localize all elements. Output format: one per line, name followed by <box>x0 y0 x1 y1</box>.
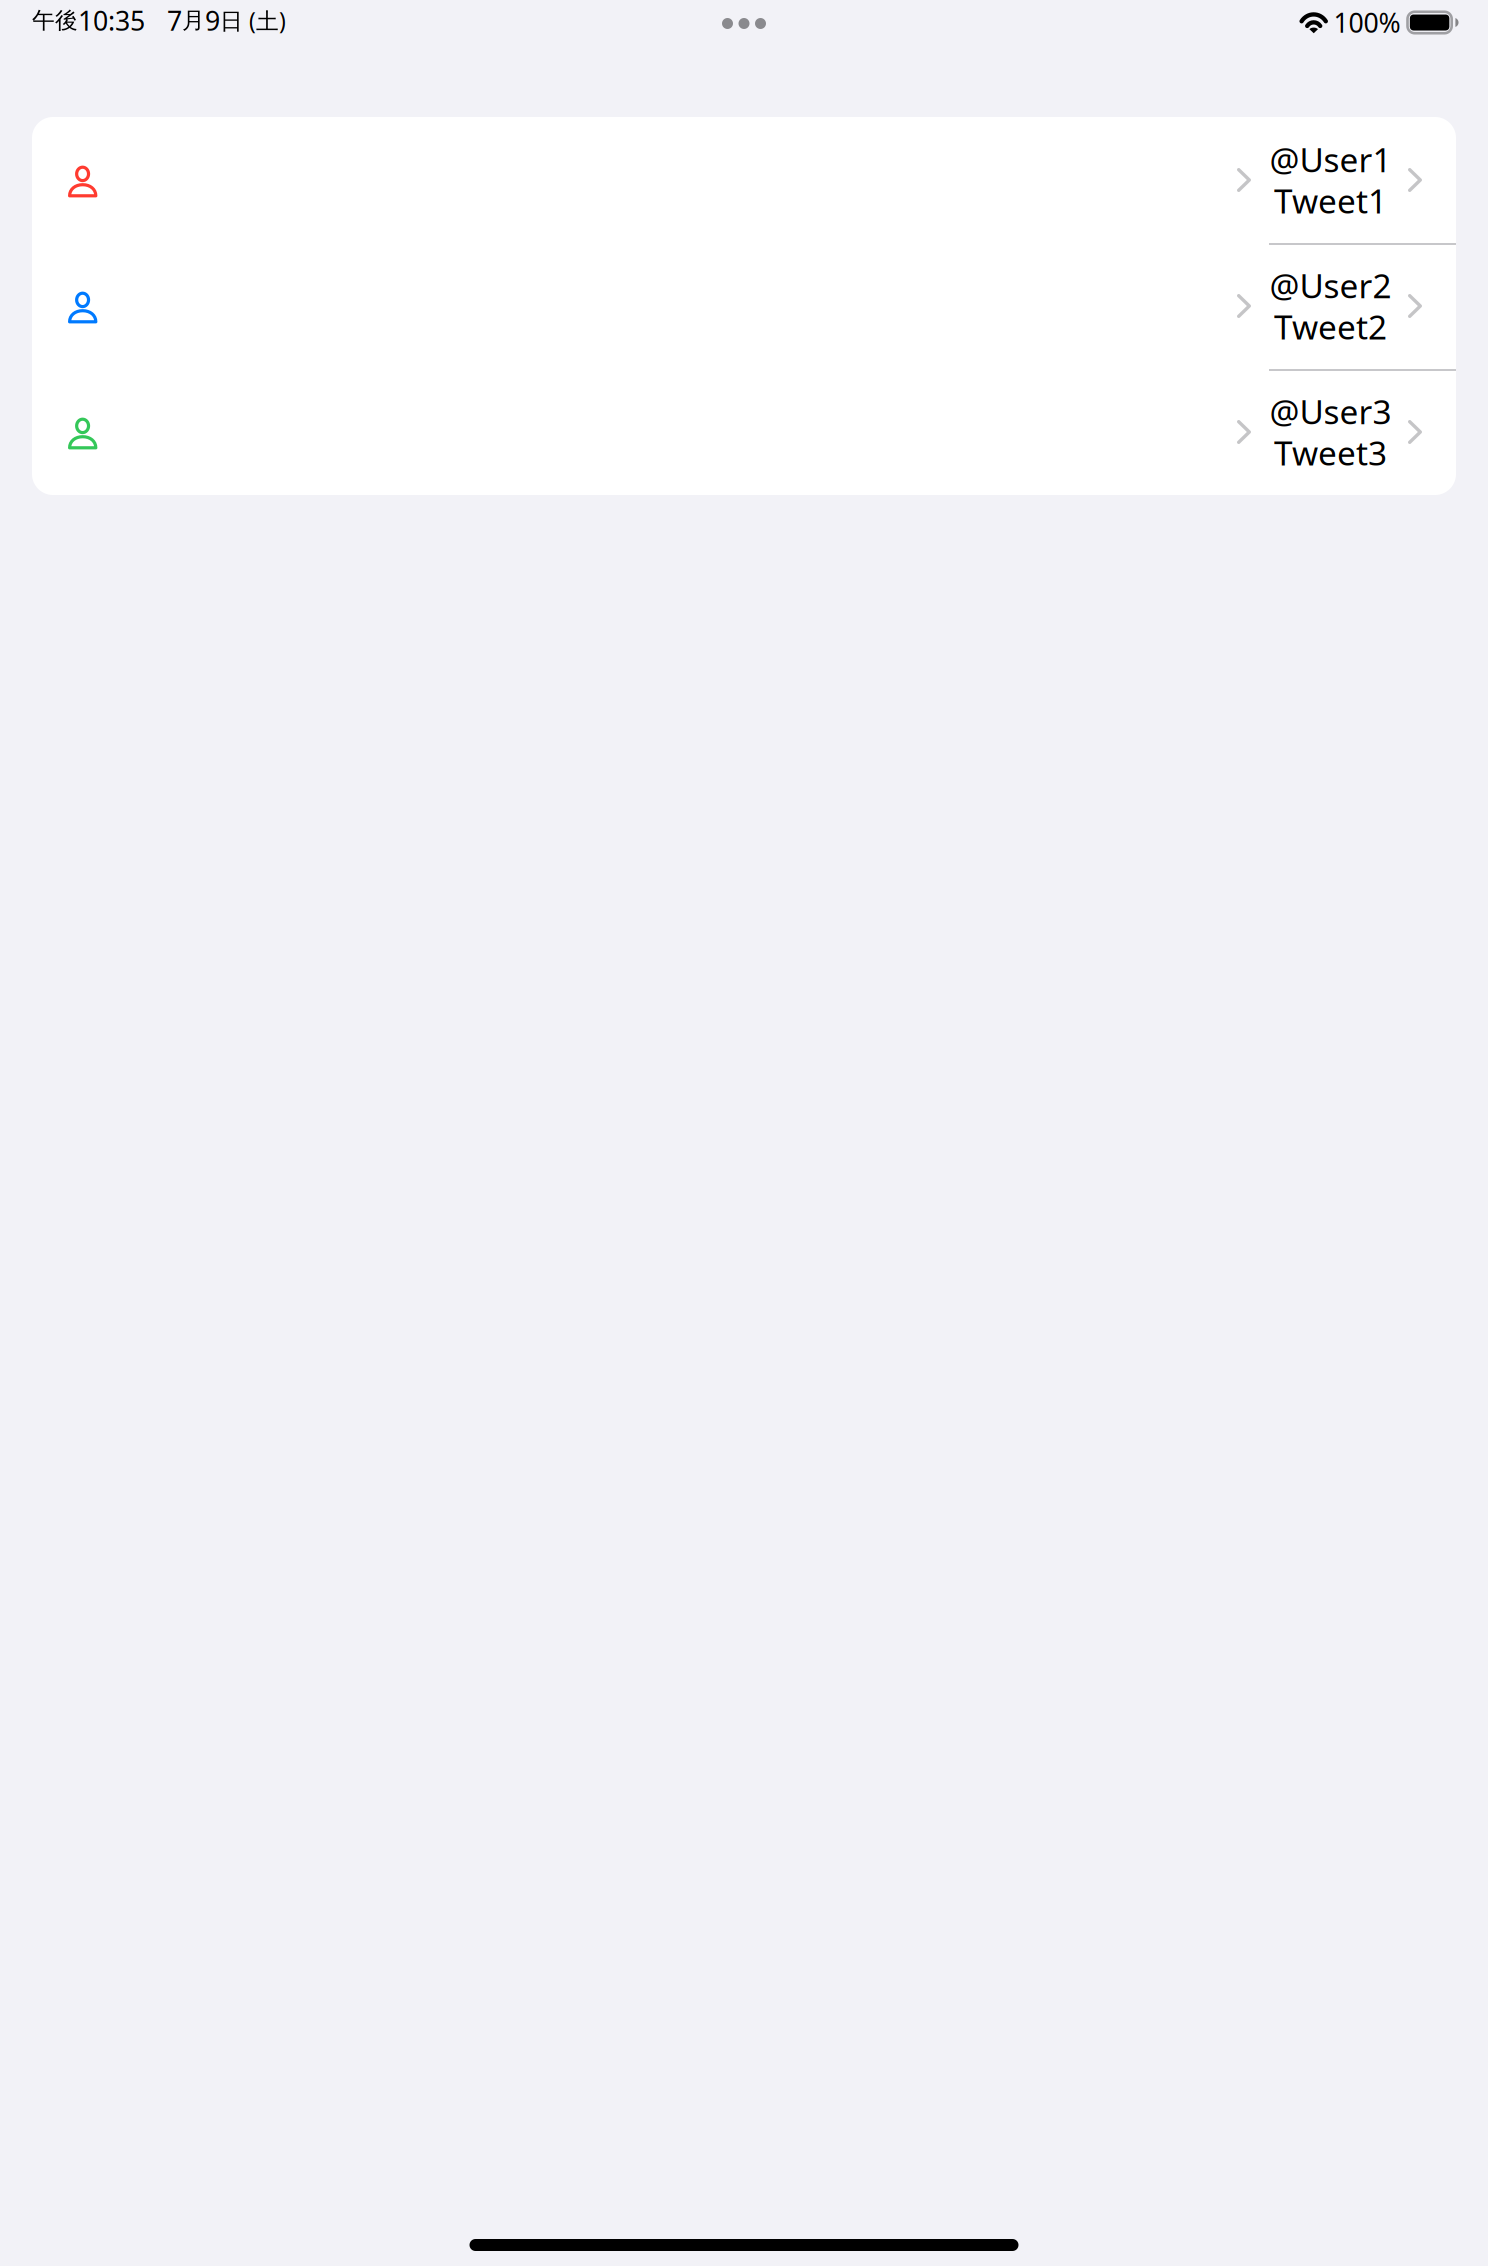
staticText: Tweet2 <box>1274 304 1387 349</box>
staticText: 9 <box>205 3 220 38</box>
button[interactable]: @User3 <box>32 369 1456 495</box>
staticText: @User3 <box>1269 389 1391 433</box>
staticText: 7 <box>167 3 182 38</box>
staticText: 月 <box>182 7 205 34</box>
staticText: 日 (土) <box>220 5 286 35</box>
staticText: @User2 <box>1269 263 1391 307</box>
staticText: Tweet3 <box>1274 430 1387 475</box>
staticText: 午後 <box>32 7 78 34</box>
staticText: 10:35 <box>78 3 145 38</box>
staticText: Tweet1 <box>1274 178 1387 223</box>
button[interactable]: @User2 <box>32 243 1456 369</box>
staticText: 100% <box>1333 5 1400 40</box>
button[interactable]: @User1 <box>32 117 1456 243</box>
staticText: @User1 <box>1269 137 1391 181</box>
